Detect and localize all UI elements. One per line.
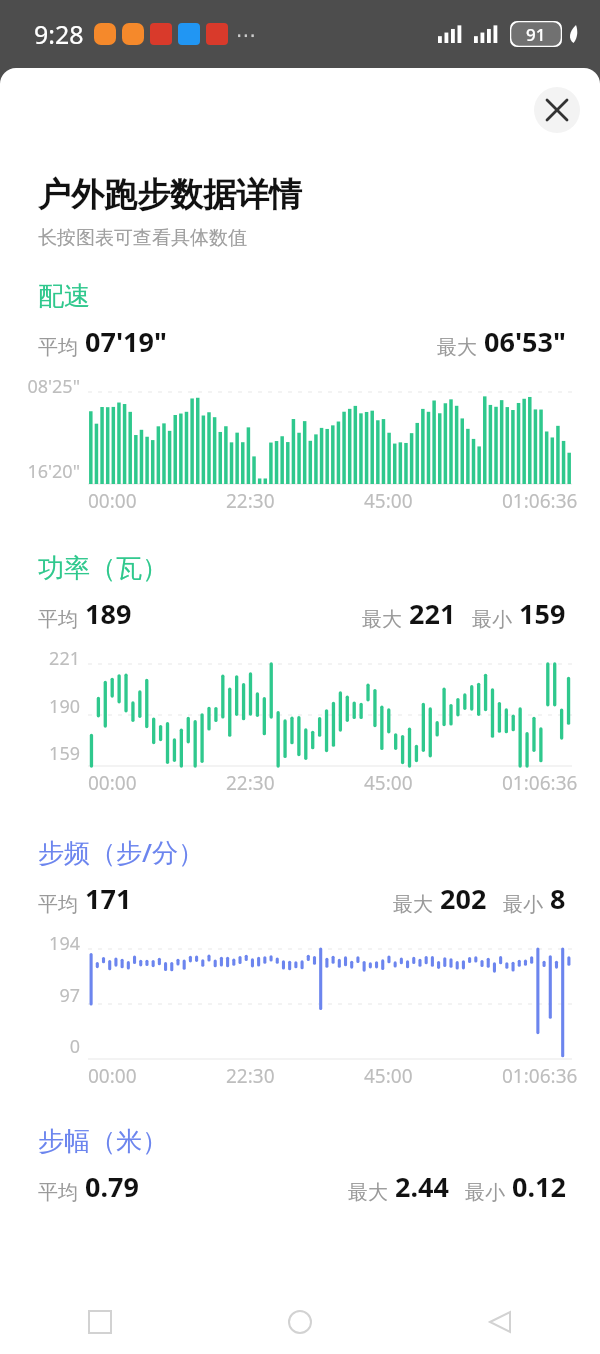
- staticText: 0.12: [512, 1168, 566, 1205]
- staticText: 平均: [38, 892, 78, 917]
- staticText: 06'53": [484, 323, 566, 360]
- staticText: 01:06:36: [502, 1063, 578, 1089]
- staticText: 45:00: [364, 770, 413, 796]
- staticText: 9:28: [34, 17, 84, 51]
- staticText: 01:06:36: [502, 770, 578, 796]
- button[interactable]: Close: [534, 87, 580, 133]
- staticText: 00:00: [88, 770, 137, 796]
- staticText: 171: [85, 880, 132, 917]
- staticText: 长按图表可查看具体数值: [38, 226, 247, 250]
- button[interactable]: Recent apps: [0, 1290, 200, 1354]
- staticText: 45:00: [364, 488, 413, 514]
- staticText: 00:00: [88, 488, 137, 514]
- staticText: 221: [10, 646, 80, 671]
- staticText: 最小: [465, 1180, 505, 1205]
- staticText: 最大: [362, 607, 402, 632]
- staticText: 0: [10, 1034, 80, 1059]
- staticText: 194: [10, 931, 80, 956]
- staticText: 159: [10, 741, 80, 766]
- staticText: 01:06:36: [502, 488, 578, 514]
- staticText: 97: [10, 983, 80, 1008]
- staticText: 22:30: [226, 770, 275, 796]
- staticText: 0.79: [85, 1168, 139, 1205]
- staticText: ⋯: [236, 23, 256, 46]
- staticText: 平均: [38, 1180, 78, 1205]
- staticText: 08'25": [10, 374, 80, 399]
- staticText: 8: [550, 880, 566, 917]
- staticText: 22:30: [226, 488, 275, 514]
- staticText: 189: [85, 595, 132, 632]
- staticText: 159: [519, 595, 566, 632]
- staticText: 最大: [348, 1180, 388, 1205]
- staticText: 07'19": [85, 323, 167, 360]
- staticText: 户外跑步数据详情: [38, 174, 302, 216]
- staticText: 最小: [472, 607, 512, 632]
- staticText: 00:00: [88, 1063, 137, 1089]
- staticText: 步频（步/分）: [38, 834, 205, 870]
- staticText: 平均: [38, 607, 78, 632]
- staticText: 平均: [38, 335, 78, 360]
- staticText: 91: [526, 23, 546, 46]
- staticText: 最大: [437, 335, 477, 360]
- staticText: 45:00: [364, 1063, 413, 1089]
- staticText: 190: [10, 694, 80, 719]
- staticText: 步幅（米）: [38, 1125, 168, 1158]
- staticText: 最小: [503, 892, 543, 917]
- staticText: 最大: [393, 892, 433, 917]
- staticText: 功率（瓦）: [38, 552, 168, 585]
- staticText: 221: [409, 595, 456, 632]
- button[interactable]: Back: [400, 1290, 600, 1354]
- button[interactable]: Home: [200, 1290, 400, 1354]
- staticText: 16'20": [10, 459, 80, 484]
- staticText: 配速: [38, 280, 90, 313]
- staticText: 202: [440, 880, 487, 917]
- staticText: 2.44: [395, 1168, 449, 1205]
- staticText: 22:30: [226, 1063, 275, 1089]
